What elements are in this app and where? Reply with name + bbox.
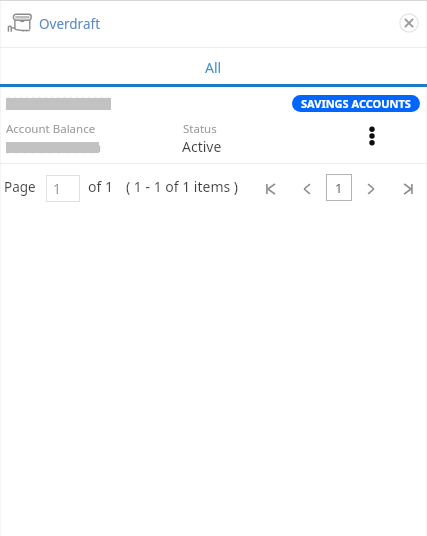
staticText: 1	[335, 179, 343, 197]
button[interactable]: Last page	[394, 175, 422, 203]
button[interactable]: Next page	[357, 175, 385, 203]
button[interactable]: Previous page	[293, 175, 321, 203]
button[interactable]: 1	[326, 174, 352, 201]
staticText: 1	[53, 179, 62, 198]
staticText: Active	[182, 137, 222, 156]
button[interactable]: 1	[46, 175, 80, 202]
button[interactable]: SAVINGS ACCOUNTS	[292, 95, 420, 112]
button[interactable]: More options	[360, 124, 384, 148]
staticText: of 1	[88, 177, 113, 196]
button[interactable]: All	[0, 48, 427, 84]
staticText: SAVINGS ACCOUNTS	[301, 96, 411, 111]
button[interactable]: First page	[257, 175, 285, 203]
button[interactable]: Overdraft	[4, 8, 104, 40]
button[interactable]: Close	[398, 12, 420, 34]
staticText: ( 1 - 1 of 1 items )	[126, 177, 239, 196]
staticText: Status	[183, 121, 217, 137]
staticText: Page	[4, 178, 36, 196]
staticText: Overdraft	[39, 15, 101, 33]
staticText: All	[205, 58, 222, 77]
staticText: Account Balance	[6, 121, 96, 137]
